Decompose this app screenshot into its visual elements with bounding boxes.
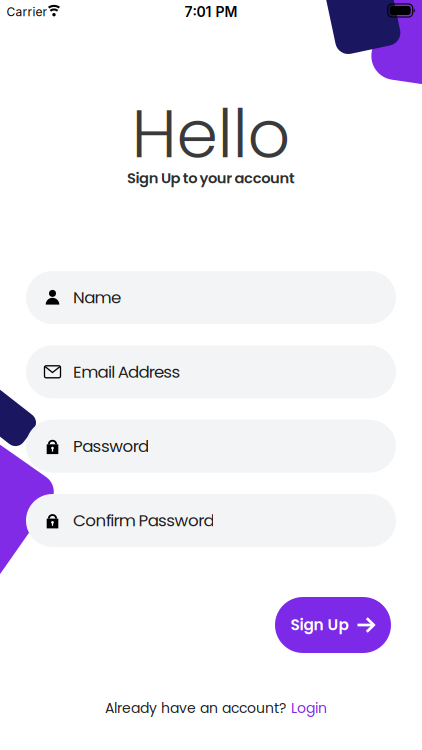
- staticText: Name: [73, 286, 121, 309]
- button[interactable]: Name: [26, 271, 396, 324]
- staticText: Login: [291, 698, 327, 718]
- button[interactable]: Email Address: [26, 345, 396, 398]
- button[interactable]: Confirm Password: [26, 494, 396, 547]
- staticText: Email Address: [73, 360, 181, 383]
- staticText: Password: [73, 434, 149, 458]
- staticText: Carrier: [6, 5, 47, 19]
- staticText: 7:01 PM: [184, 3, 237, 20]
- staticText: Hello: [131, 87, 290, 181]
- button[interactable]: Login: [291, 698, 327, 718]
- staticText: Sign Up to your account: [127, 168, 295, 188]
- button[interactable]: Sign Up: [275, 597, 391, 653]
- staticText: Sign Up: [290, 614, 348, 636]
- button[interactable]: Password: [26, 420, 396, 473]
- staticText: Already have an account?: [105, 698, 286, 718]
- staticText: Confirm Password: [73, 509, 214, 532]
